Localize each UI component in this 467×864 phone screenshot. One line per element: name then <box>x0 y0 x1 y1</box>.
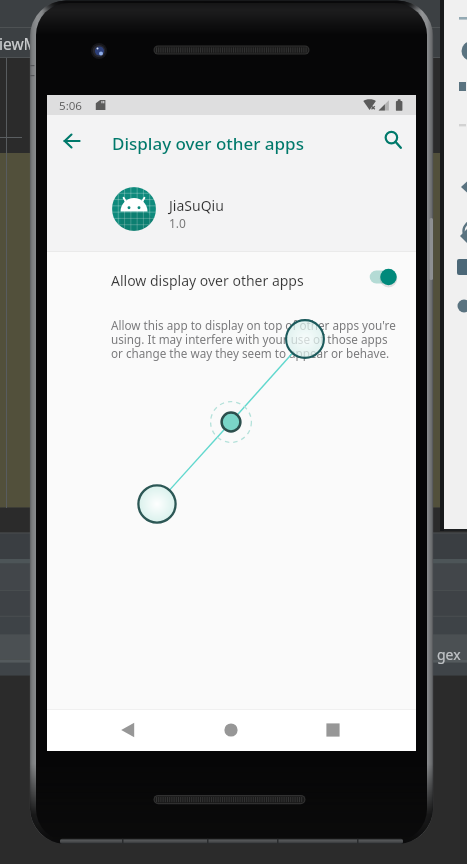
button[interactable]: Navigate up <box>52 121 92 161</box>
button[interactable]: Back <box>106 709 150 751</box>
button[interactable]: Allow display over other apps <box>358 261 406 293</box>
button[interactable]: Search <box>373 120 413 160</box>
staticText: 5:06 <box>59 98 83 114</box>
staticText: gex <box>437 645 461 664</box>
staticText: Allow display over other apps <box>111 271 304 290</box>
staticText: Allow this app to display on top of othe… <box>111 317 397 362</box>
button[interactable]: Recent apps <box>311 709 355 751</box>
staticText: Display over other apps <box>112 132 304 155</box>
staticText: iewM <box>0 33 38 54</box>
button[interactable]: Allow display over other apps <box>47 252 416 308</box>
staticText: JiaSuQiu <box>169 196 224 215</box>
button[interactable]: Home <box>209 709 253 751</box>
staticText: 1.0 <box>169 215 186 231</box>
